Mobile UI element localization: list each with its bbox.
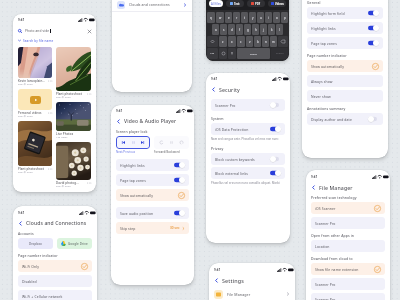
button[interactable]: l [276, 24, 283, 35]
button[interactable]: Scanner Pro [211, 99, 285, 111]
button[interactable] [56, 47, 91, 91]
staticText: 2021年 2020 [18, 83, 33, 86]
button[interactable]: Rewind [154, 136, 189, 149]
button[interactable]: s [220, 24, 227, 35]
button[interactable]: File Manager [214, 287, 290, 300]
button[interactable] [56, 142, 91, 180]
button[interactable]: Clouds and connections [117, 0, 187, 11]
staticText: Page number indicator [18, 253, 58, 258]
button[interactable]: Toggle [368, 25, 379, 31]
button[interactable]: Highlight form field [307, 7, 383, 19]
button[interactable]: j [260, 24, 267, 35]
button[interactable]: h [252, 24, 259, 35]
button[interactable]: Toggle [270, 170, 281, 176]
button[interactable]: t [241, 12, 248, 23]
button[interactable]: PDF [247, 0, 265, 7]
button[interactable]: e [225, 12, 232, 23]
button[interactable]: Voice input [228, 48, 236, 59]
button[interactable]: Google Drive [57, 238, 92, 249]
button[interactable]: Toggle [368, 10, 379, 16]
staticText: m [272, 40, 275, 44]
button[interactable] [56, 102, 91, 131]
button[interactable]: Backspace [278, 36, 288, 47]
button[interactable]: iOS Data Protection [211, 123, 285, 135]
button[interactable]: Toggle [270, 126, 281, 132]
button[interactable]: q [207, 12, 215, 23]
button[interactable]: p [281, 12, 288, 23]
button[interactable]: w [216, 12, 224, 23]
button[interactable]: d [228, 24, 235, 35]
other: Previous [121, 140, 126, 145]
button[interactable] [18, 121, 52, 166]
staticText: 9:41 [116, 109, 123, 113]
button[interactable]: Display author and date [307, 113, 383, 125]
button[interactable]: Page tap zones [116, 174, 189, 186]
button[interactable]: Toggle [368, 116, 379, 122]
button[interactable] [18, 89, 52, 110]
button[interactable]: iOS Scanner [311, 202, 385, 214]
button[interactable]: space [237, 48, 270, 59]
button[interactable]: g [244, 24, 251, 35]
button[interactable]: Disabled [18, 275, 92, 287]
button[interactable]: Toggle [174, 177, 185, 183]
button[interactable]: Back [210, 86, 217, 93]
button[interactable]: Scanner Pro [311, 278, 385, 290]
button[interactable]: n [262, 36, 269, 47]
button[interactable]: c [237, 36, 245, 47]
button[interactable] [18, 47, 52, 78]
button[interactable]: Videos [268, 0, 286, 7]
button[interactable]: Wi-Fi + Cellular network [18, 290, 92, 300]
button[interactable]: Back [17, 220, 24, 227]
button[interactable]: Save audio position [116, 207, 189, 219]
button[interactable]: Show automatically [307, 60, 383, 72]
button[interactable]: a [212, 24, 219, 35]
button[interactable]: Back [213, 277, 220, 284]
button[interactable]: u [257, 12, 264, 23]
button[interactable]: f [236, 24, 243, 35]
button[interactable]: i [265, 12, 272, 23]
staticText: Display author and date [311, 117, 352, 122]
button[interactable]: Always show [307, 75, 383, 87]
button[interactable]: Scanner Pro [311, 293, 385, 300]
button[interactable]: Scanner Pro [311, 217, 385, 229]
button[interactable]: x [228, 36, 236, 47]
button[interactable]: Toggle [270, 156, 281, 162]
button[interactable]: Show file name extension [311, 263, 385, 275]
button[interactable]: Show automatically [116, 189, 189, 201]
button[interactable]: y [249, 12, 256, 23]
button[interactable]: Text [226, 0, 244, 7]
button[interactable]: r [233, 12, 240, 23]
staticText: Clouds and Connections [26, 220, 87, 227]
button[interactable]: Wi-Fi Only [18, 260, 92, 272]
button[interactable]: Skip step [116, 222, 189, 234]
button[interactable]: Search by file name [18, 36, 91, 45]
button[interactable]: Toggle [174, 162, 185, 168]
button[interactable]: Toggle [368, 40, 379, 46]
button[interactable]: z [219, 36, 227, 47]
button[interactable]: All files [209, 0, 223, 7]
button[interactable]: Emoji [219, 48, 227, 59]
staticText: l [279, 28, 280, 32]
button[interactable]: Search [18, 26, 91, 36]
button[interactable]: Block custom keywords [211, 153, 285, 165]
button[interactable]: Highlight links [116, 159, 189, 171]
button[interactable]: b [254, 36, 261, 47]
button[interactable]: Toggle [270, 102, 281, 108]
button[interactable]: Back [115, 118, 122, 125]
button[interactable]: Page tap zones [307, 37, 383, 49]
button[interactable]: Previous [116, 136, 150, 149]
button[interactable]: v [246, 36, 253, 47]
button[interactable]: Shift [207, 36, 218, 47]
button[interactable]: m [270, 36, 277, 47]
button[interactable]: Block external links [211, 167, 285, 179]
button[interactable]: Toggle [174, 210, 185, 216]
button[interactable]: Never show [307, 90, 383, 102]
button[interactable]: Highlight links [307, 22, 383, 34]
button[interactable]: Dropbox [18, 238, 53, 249]
button[interactable]: 123 [207, 48, 218, 59]
button[interactable]: Back [310, 184, 317, 191]
button[interactable]: k [268, 24, 275, 35]
button[interactable]: search [271, 48, 288, 59]
button[interactable]: Location [311, 240, 385, 252]
button[interactable]: o [273, 12, 280, 23]
